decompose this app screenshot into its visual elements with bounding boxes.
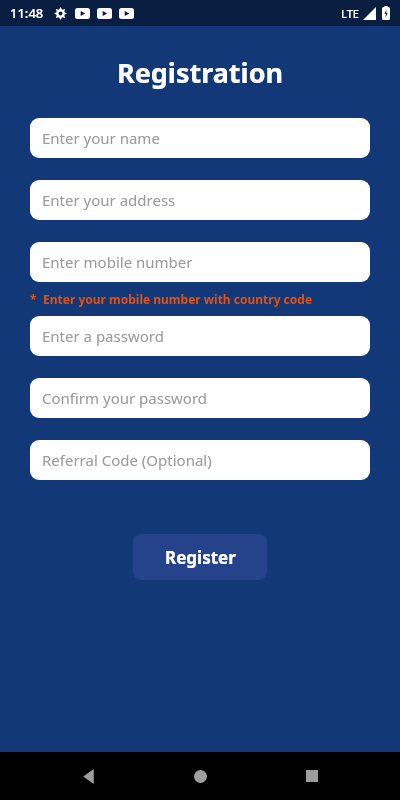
button[interactable]: Back xyxy=(64,752,112,800)
button[interactable]: Home xyxy=(176,752,224,800)
button[interactable]: Enter a password xyxy=(30,316,370,356)
button[interactable]: Referral Code (Optional) xyxy=(30,440,370,480)
button[interactable]: Enter your address xyxy=(30,180,370,220)
staticText: Enter a password xyxy=(42,326,164,346)
staticText: Enter your mobile number with country co… xyxy=(43,291,313,307)
staticText: Registration xyxy=(0,54,400,91)
staticText: Register xyxy=(165,546,236,569)
staticText: LTE xyxy=(341,6,359,21)
staticText: Enter mobile number xyxy=(42,252,193,272)
staticText: Referral Code (Optional) xyxy=(42,450,212,470)
button[interactable]: Register xyxy=(133,534,267,580)
staticText: * xyxy=(30,291,37,307)
button[interactable]: Confirm your password xyxy=(30,378,370,418)
staticText: 11:48 xyxy=(10,4,44,22)
button[interactable]: Enter your name xyxy=(30,118,370,158)
staticText: Confirm your password xyxy=(42,388,208,408)
staticText: Enter your address xyxy=(42,190,176,210)
button[interactable]: Recent apps xyxy=(288,752,336,800)
staticText: Enter your name xyxy=(42,128,160,148)
button[interactable]: Enter mobile number xyxy=(30,242,370,282)
